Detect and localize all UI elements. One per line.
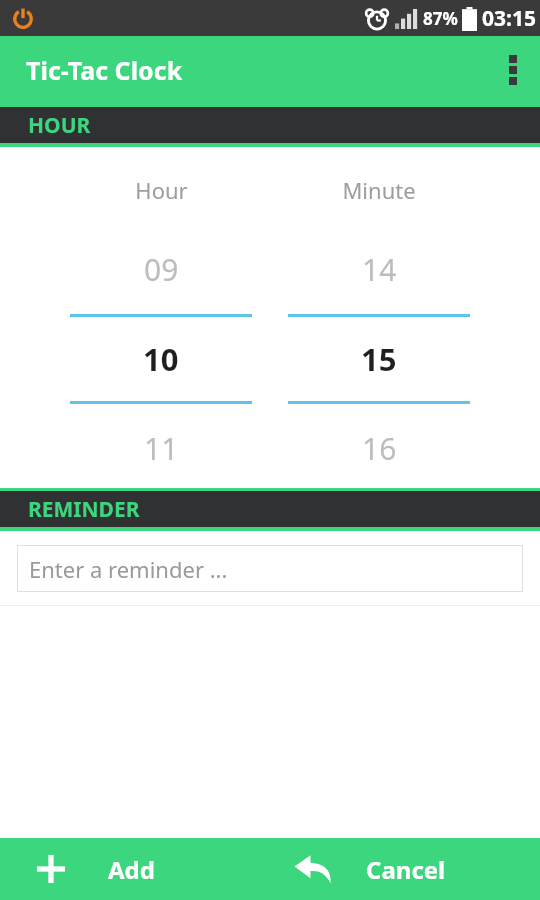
staticText: Cancel <box>366 853 446 886</box>
button[interactable]: Add <box>0 838 270 900</box>
button[interactable]: More options <box>486 36 540 104</box>
staticText: 11 <box>144 428 179 469</box>
staticText: Add <box>108 853 155 886</box>
staticText: 10 <box>143 338 179 380</box>
staticText: 03:15 <box>482 4 536 33</box>
staticText: HOUR <box>28 111 91 140</box>
button[interactable]: Cancel <box>270 838 540 900</box>
staticText: 14 <box>362 249 397 290</box>
staticText: 09 <box>144 249 179 290</box>
staticText: 15 <box>361 338 397 380</box>
staticText: 87% <box>423 7 458 30</box>
staticText: REMINDER <box>28 495 140 524</box>
staticText: Enter a reminder ... <box>29 554 228 584</box>
staticText: 16 <box>362 428 397 469</box>
button[interactable]: Enter a reminder ... <box>17 545 523 592</box>
staticText: Minute <box>342 175 416 205</box>
button[interactable]: Minute <box>284 147 474 488</box>
staticText: Tic-Tac Clock <box>26 53 183 87</box>
staticText: Hour <box>135 175 188 205</box>
button[interactable]: Hour <box>66 147 256 488</box>
